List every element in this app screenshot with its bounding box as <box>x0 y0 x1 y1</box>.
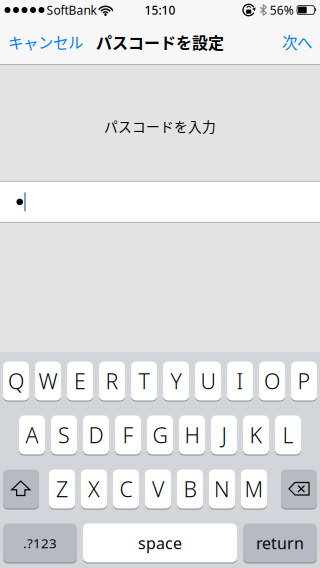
button[interactable]: space <box>83 523 237 562</box>
staticText: Q <box>8 367 24 395</box>
staticText: I <box>236 367 243 395</box>
button[interactable]: P <box>291 361 317 400</box>
staticText: S <box>58 421 70 449</box>
button[interactable]: パスコード入力フィールド <box>0 181 320 223</box>
button[interactable]: E <box>67 361 93 400</box>
staticText: H <box>184 421 199 449</box>
button[interactable]: D <box>83 415 109 454</box>
staticText: キャンセル <box>8 31 83 53</box>
button[interactable]: .?123 <box>3 523 77 562</box>
staticText: X <box>88 475 100 503</box>
staticText: 次へ <box>282 31 312 53</box>
staticText: .?123 <box>23 534 57 552</box>
staticText: A <box>25 421 38 449</box>
button[interactable]: C <box>113 469 139 508</box>
button[interactable]: H <box>179 415 205 454</box>
button[interactable]: X <box>81 469 107 508</box>
staticText: P <box>297 367 310 395</box>
button[interactable]: U <box>195 361 221 400</box>
button[interactable]: K <box>243 415 269 454</box>
staticText: T <box>138 367 149 395</box>
button[interactable]: Q <box>3 361 29 400</box>
staticText: V <box>152 475 164 503</box>
button[interactable]: B <box>177 469 203 508</box>
staticText: R <box>105 367 118 395</box>
button[interactable]: N <box>209 469 235 508</box>
staticText: M <box>244 475 263 503</box>
button[interactable]: 次へ <box>282 31 320 53</box>
staticText: O <box>264 367 280 395</box>
button[interactable]: A <box>19 415 45 454</box>
staticText: SoftBank <box>46 2 96 18</box>
staticText: W <box>38 367 57 395</box>
button[interactable]: F <box>115 415 141 454</box>
staticText: パスコードを入力 <box>104 116 216 136</box>
button[interactable]: I <box>227 361 253 400</box>
button[interactable]: L <box>275 415 301 454</box>
staticText: Y <box>170 367 181 395</box>
button[interactable]: R <box>99 361 125 400</box>
button[interactable]: T <box>131 361 157 400</box>
staticText: U <box>200 367 215 395</box>
button[interactable]: O <box>259 361 285 400</box>
button[interactable]: S <box>51 415 77 454</box>
button[interactable]: G <box>147 415 173 454</box>
button[interactable]: return <box>243 523 317 562</box>
button[interactable]: Delete <box>281 469 317 508</box>
button[interactable]: Shift <box>3 469 39 508</box>
staticText: C <box>119 475 132 503</box>
button[interactable]: W <box>35 361 61 400</box>
staticText: F <box>122 421 133 449</box>
staticText: Z <box>56 475 68 503</box>
staticText: E <box>74 367 86 395</box>
staticText: G <box>152 421 167 449</box>
staticText: K <box>249 421 262 449</box>
button[interactable]: Y <box>163 361 189 400</box>
staticText: L <box>282 421 293 449</box>
button[interactable]: V <box>145 469 171 508</box>
staticText: パスコードを設定 <box>96 30 224 54</box>
staticText: return <box>256 532 304 554</box>
staticText: 15:10 <box>144 2 175 18</box>
staticText: 56% <box>270 2 294 18</box>
button[interactable]: キャンセル <box>0 31 83 53</box>
staticText: B <box>183 475 196 503</box>
button[interactable]: J <box>211 415 237 454</box>
staticText: N <box>214 475 230 503</box>
button[interactable]: M <box>241 469 267 508</box>
staticText: D <box>88 421 103 449</box>
staticText: J <box>221 421 226 449</box>
staticText: space <box>138 532 182 554</box>
button[interactable]: Z <box>49 469 75 508</box>
